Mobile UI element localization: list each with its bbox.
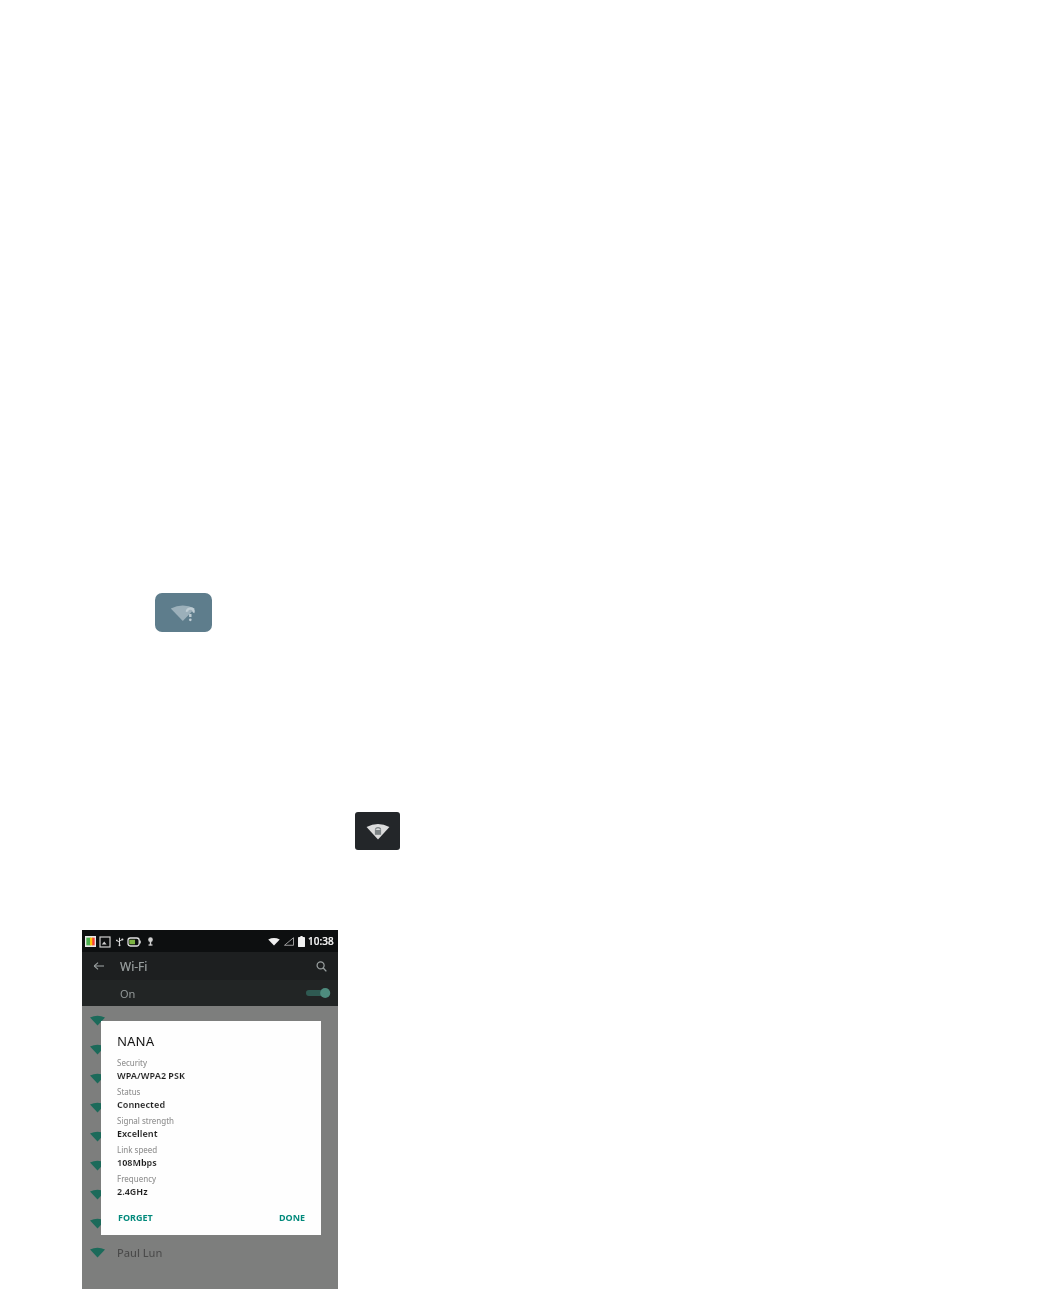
button[interactable]: 360WiFi-C91D — [82, 1209, 338, 1238]
button[interactable]: DONE — [278, 1208, 307, 1226]
staticText: Security — [117, 1057, 148, 1068]
button[interactable]: Wi-Fi unknown — [155, 593, 212, 632]
staticText: NANA — [117, 1032, 155, 1050]
button[interactable]: 360WiFi-VC — [82, 1180, 338, 1209]
staticText: Link speed — [117, 1144, 158, 1155]
staticText: DONE — [279, 1211, 306, 1223]
button[interactable] — [82, 1151, 338, 1180]
staticText: WPA/WPA2 PSK — [117, 1069, 185, 1081]
button[interactable]: Paul Lun — [82, 1238, 338, 1267]
button[interactable] — [82, 1064, 338, 1093]
staticText: 360WiFi-VC — [117, 1187, 176, 1202]
staticText: 108Mbps — [117, 1156, 157, 1168]
staticText: Wi-Fi — [120, 958, 148, 974]
staticText: Signal strength — [117, 1115, 175, 1126]
staticText: 2.4GHz — [117, 1185, 148, 1197]
staticText: Connected — [117, 1098, 166, 1110]
staticText: Status — [117, 1086, 141, 1097]
staticText: Excellent — [117, 1127, 158, 1139]
button[interactable]: Search — [311, 956, 331, 976]
button[interactable] — [82, 1035, 338, 1064]
staticText: On — [120, 986, 136, 1001]
button[interactable] — [82, 1093, 338, 1122]
button[interactable]: Secured Wi-Fi — [355, 812, 400, 850]
staticText: FORGET — [118, 1211, 153, 1223]
staticText: 10:38 — [308, 934, 334, 948]
staticText: Frequency — [117, 1173, 157, 1184]
button[interactable]: FORGET — [117, 1208, 154, 1226]
staticText: 360WiFi-C91D — [117, 1216, 190, 1231]
button[interactable]: Back — [88, 955, 110, 977]
staticText: Paul Lun — [117, 1245, 163, 1260]
button[interactable]: On — [82, 980, 338, 1006]
button[interactable] — [82, 1122, 338, 1151]
button[interactable] — [82, 1006, 338, 1035]
